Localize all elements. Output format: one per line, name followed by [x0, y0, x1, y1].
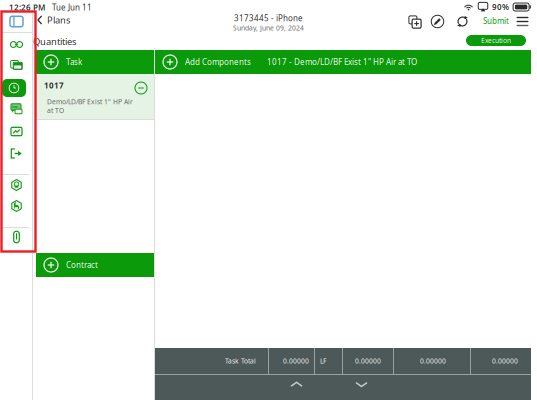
staticText: Sunday, June 09, 2024: [233, 23, 304, 32]
button[interactable]: Scroll Down: [355, 381, 368, 388]
staticText: 12:26 PM: [9, 2, 45, 13]
button[interactable]: Plans: [37, 13, 99, 27]
staticText: Plans: [47, 14, 70, 26]
staticText: LF: [320, 357, 326, 365]
button[interactable]: Refresh: [456, 15, 469, 28]
button[interactable]: Reports: [1, 125, 32, 138]
button[interactable]: Messages: [1, 102, 32, 116]
button[interactable]: Edit: [431, 15, 444, 28]
button[interactable]: Contract: [36, 253, 154, 277]
staticText: 0.00000: [283, 357, 309, 365]
staticText: Contract: [66, 260, 98, 270]
staticText: 1017 - Demo/LD/BF Exist 1" HP Air at TO: [267, 57, 417, 67]
button[interactable]: Sign Out: [1, 147, 32, 160]
staticText: Demo/LD/BF Exist 1" HP Air at TO: [47, 97, 133, 115]
staticText: 0.00000: [492, 357, 518, 365]
staticText: 0.00000: [420, 357, 446, 365]
button[interactable]: Scroll Up: [290, 381, 303, 388]
button[interactable]: Safety: [1, 199, 32, 213]
staticText: Add Components: [185, 57, 251, 67]
staticText: Task: [66, 57, 82, 67]
staticText: 3173445 - iPhone: [234, 13, 303, 23]
button[interactable]: Attachments: [1, 230, 32, 244]
staticText: Submit: [483, 16, 509, 26]
staticText: Task Total: [225, 357, 256, 365]
button[interactable]: Time Entry: [1, 79, 32, 97]
staticText: Execution: [481, 36, 511, 45]
button[interactable]: Submit: [479, 14, 513, 28]
staticText: 0.00000: [355, 357, 381, 365]
button[interactable]: Projects: [1, 58, 32, 72]
button[interactable]: Permits: [1, 178, 32, 192]
staticText: Quantities: [33, 35, 76, 48]
button[interactable]: Eyewear: [1, 38, 32, 51]
button[interactable]: Menu: [516, 16, 529, 27]
button[interactable]: Task: [36, 50, 154, 74]
staticText: 1017: [44, 80, 64, 91]
button[interactable]: 1017: [36, 74, 154, 119]
staticText: 90%: [492, 2, 509, 12]
button[interactable]: Toggle Sidebar: [1, 16, 32, 27]
button[interactable]: Add Components: [155, 50, 531, 74]
staticText: Tue Jun 11: [52, 2, 92, 13]
button[interactable]: Execution: [466, 35, 526, 46]
button[interactable]: Duplicate: [408, 15, 422, 29]
